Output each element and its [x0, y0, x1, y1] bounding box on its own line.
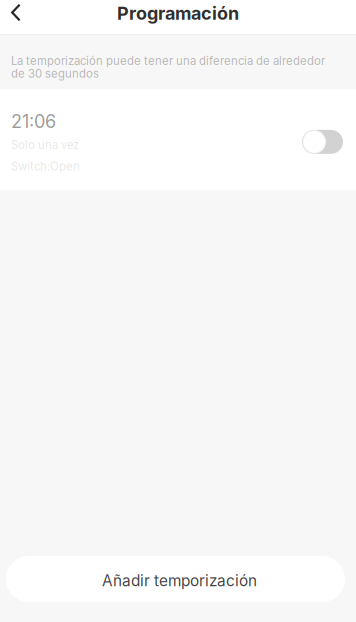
staticText: 21:06: [11, 111, 56, 132]
button[interactable]: 21:06: [0, 89, 356, 190]
button[interactable]: Back: [0, 0, 33, 29]
staticText: Solo una vez: [11, 138, 79, 152]
staticText: La temporización puede tener una diferen…: [11, 54, 325, 80]
staticText: Programación: [117, 2, 239, 24]
button[interactable]: Añadir temporización: [6, 556, 345, 602]
staticText: Añadir temporización: [102, 571, 257, 590]
staticText: Switch:Open: [11, 159, 80, 173]
